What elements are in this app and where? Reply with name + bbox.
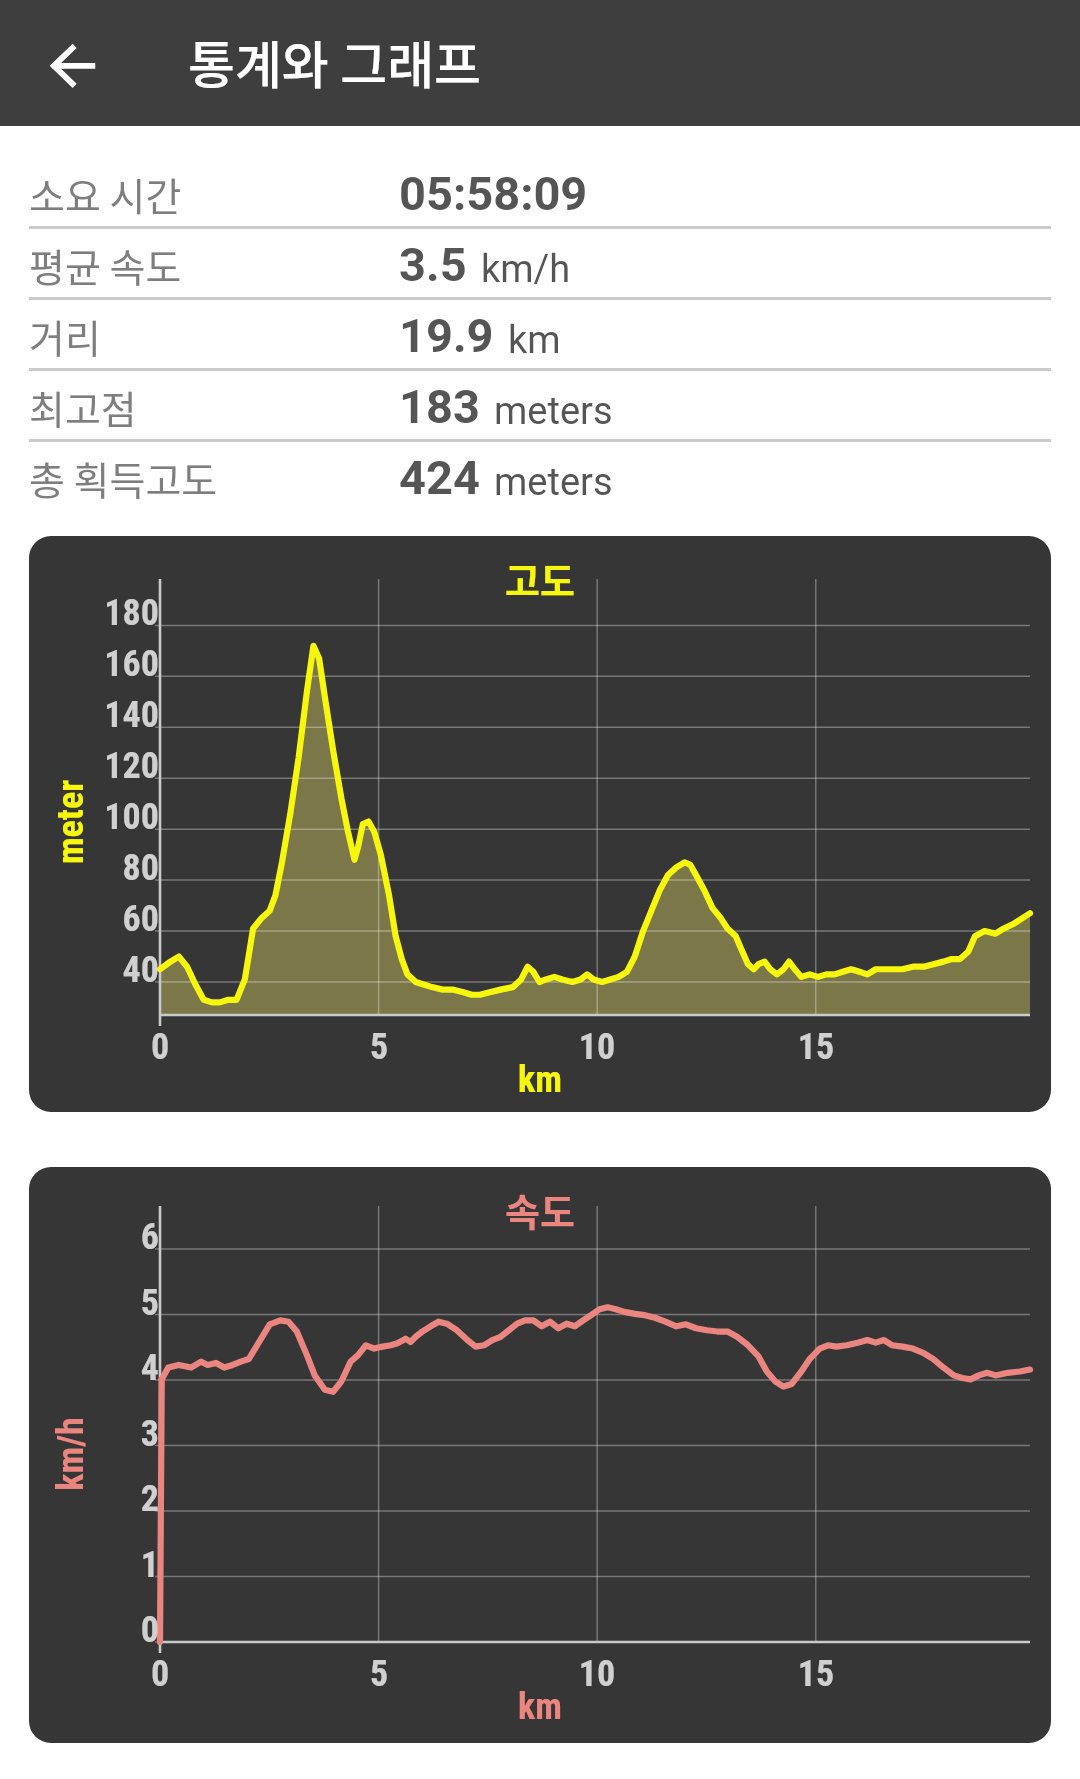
staticText: 40: [0, 949, 159, 989]
staticText: 15: [736, 1653, 896, 1693]
staticText: 10: [517, 1653, 677, 1693]
staticText: 0: [80, 1026, 240, 1066]
staticText: 고도: [390, 551, 690, 606]
staticText: 최고점: [29, 379, 137, 435]
staticText: 0: [0, 1609, 159, 1649]
button[interactable]: 총 획득고도: [0, 442, 1080, 513]
staticText: km: [420, 1686, 660, 1726]
staticText: km/h: [50, 1334, 90, 1574]
staticText: 거리: [29, 308, 101, 364]
staticText: 통계와 그래프: [188, 25, 481, 99]
staticText: 19.9: [399, 308, 494, 363]
staticText: 15: [736, 1026, 896, 1066]
staticText: 05:58:09: [399, 166, 588, 221]
staticText: 소요 시간: [29, 166, 182, 222]
staticText: 3.5: [399, 237, 467, 292]
staticText: 5: [299, 1026, 459, 1066]
staticText: 183: [399, 379, 480, 434]
staticText: 3: [0, 1413, 159, 1453]
staticText: 1: [0, 1544, 159, 1584]
staticText: 속도: [390, 1182, 690, 1237]
staticText: 424: [399, 450, 480, 505]
staticText: 10: [517, 1026, 677, 1066]
staticText: km: [508, 318, 561, 363]
staticText: 평균 속도: [29, 237, 182, 293]
button[interactable]: [29, 1167, 1051, 1743]
staticText: 5: [299, 1653, 459, 1693]
staticText: km: [420, 1059, 660, 1099]
staticText: 4: [0, 1347, 159, 1387]
staticText: meter: [50, 702, 90, 942]
staticText: 총 획득고도: [29, 450, 218, 506]
button[interactable]: 최고점: [0, 371, 1080, 442]
button[interactable]: 소요 시간: [0, 158, 1080, 229]
staticText: 80: [0, 847, 159, 887]
staticText: 6: [0, 1216, 159, 1256]
staticText: 5: [0, 1282, 159, 1322]
staticText: 2: [0, 1478, 159, 1518]
staticText: 100: [0, 796, 159, 836]
button[interactable]: [29, 536, 1051, 1112]
staticText: 0: [80, 1653, 240, 1693]
staticText: 140: [0, 694, 159, 734]
staticText: meters: [494, 389, 613, 434]
staticText: 180: [0, 592, 159, 632]
staticText: 160: [0, 643, 159, 683]
button[interactable]: 거리: [0, 300, 1080, 371]
button[interactable]: Back: [29, 19, 117, 107]
button[interactable]: 평균 속도: [0, 229, 1080, 300]
staticText: km/h: [481, 247, 571, 292]
staticText: 60: [0, 898, 159, 938]
staticText: 120: [0, 745, 159, 785]
staticText: meters: [494, 460, 613, 505]
